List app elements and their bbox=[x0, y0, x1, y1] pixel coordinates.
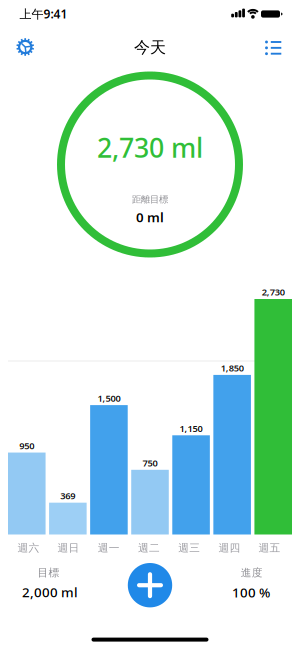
staticText: 週一 bbox=[98, 541, 120, 554]
staticText: 2,000 ml bbox=[22, 583, 78, 601]
staticText: 週日 bbox=[58, 541, 80, 554]
staticText: 1,850 bbox=[221, 362, 244, 374]
staticText: 750 bbox=[142, 457, 157, 469]
button[interactable] bbox=[260, 35, 286, 61]
staticText: 目標 bbox=[37, 566, 59, 579]
staticText: 週四 bbox=[218, 541, 240, 554]
staticText: 週二 bbox=[138, 541, 160, 554]
staticText: 今天 bbox=[134, 38, 166, 57]
staticText: 距離目標 bbox=[132, 194, 168, 205]
staticText: 1,500 bbox=[97, 392, 120, 404]
staticText: 2,730 bbox=[262, 286, 285, 298]
button[interactable] bbox=[12, 34, 38, 60]
staticText: 週五 bbox=[259, 541, 281, 554]
staticText: 1,150 bbox=[180, 422, 203, 434]
staticText: 950 bbox=[19, 439, 34, 452]
staticText: 上午9:41 bbox=[19, 6, 67, 22]
button[interactable] bbox=[128, 563, 172, 607]
staticText: 週三 bbox=[178, 541, 200, 554]
staticText: 0 ml bbox=[136, 208, 164, 226]
staticText: 100 % bbox=[232, 583, 270, 601]
staticText: 週六 bbox=[17, 541, 39, 554]
staticText: 369 bbox=[60, 489, 75, 502]
staticText: 2,730 ml bbox=[97, 130, 203, 165]
staticText: 進度 bbox=[241, 566, 263, 579]
